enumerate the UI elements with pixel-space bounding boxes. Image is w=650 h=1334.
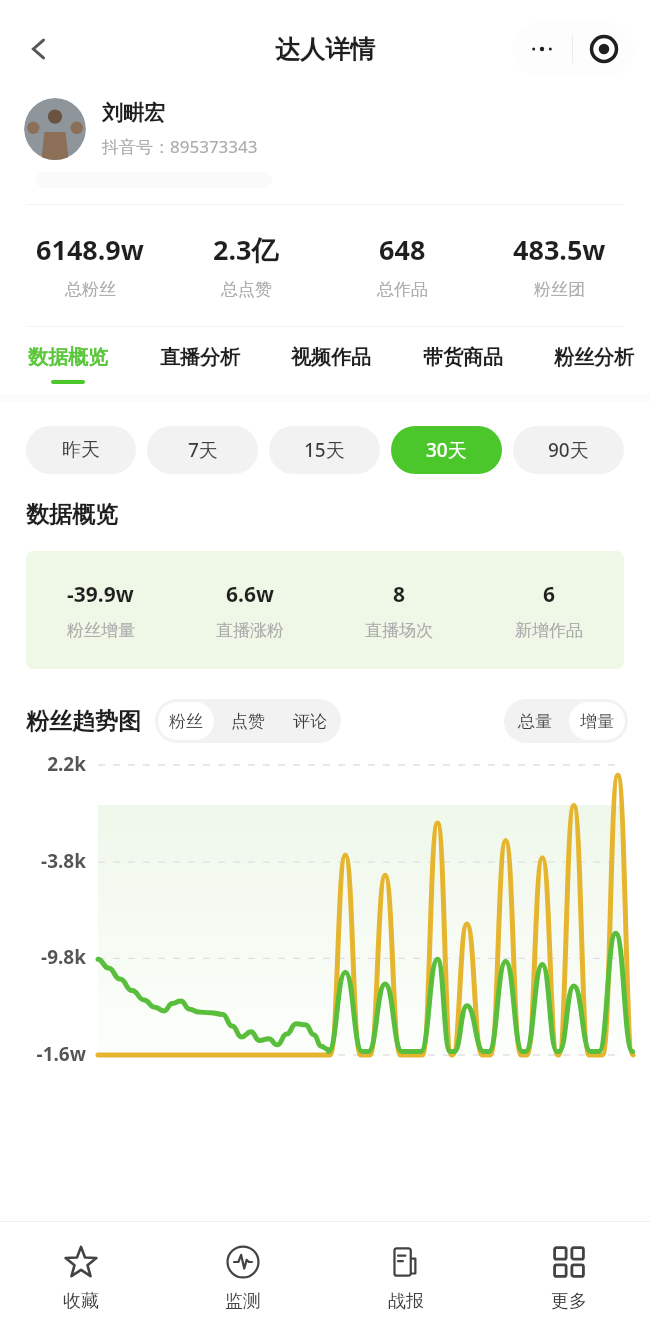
- button[interactable]: Back: [12, 22, 66, 76]
- button[interactable]: -39.9w: [26, 551, 624, 669]
- button[interactable]: More: [487, 1222, 650, 1334]
- button[interactable]: 带货商品: [423, 345, 503, 384]
- staticText: 视频作品: [291, 345, 371, 370]
- button[interactable]: 昨天: [26, 426, 136, 474]
- button[interactable]: More: [512, 22, 572, 76]
- staticText: -3.8k: [14, 848, 86, 874]
- staticText: 483.5w: [513, 231, 606, 268]
- staticText: 达人详情: [275, 34, 375, 65]
- staticText: 90天: [548, 437, 589, 463]
- button[interactable]: 刘畊宏: [24, 98, 626, 160]
- staticText: 战报: [388, 1290, 424, 1313]
- staticText: -9.8k: [14, 944, 86, 970]
- staticText: 更多: [551, 1290, 587, 1313]
- button[interactable]: Report: [324, 1222, 487, 1334]
- staticText: 直播涨粉: [216, 620, 284, 641]
- staticText: 6.6w: [226, 580, 274, 609]
- staticText: 15天: [304, 437, 345, 463]
- staticText: 监测: [225, 1290, 261, 1313]
- button[interactable]: 90天: [513, 426, 624, 474]
- button[interactable]: 视频作品: [291, 345, 371, 384]
- other: More: [551, 1244, 587, 1280]
- staticText: -1.6w: [14, 1041, 86, 1067]
- staticText: 数据概览: [28, 345, 108, 370]
- button[interactable]: 点赞: [220, 702, 276, 740]
- staticText: 8: [393, 580, 406, 609]
- staticText: 总粉丝: [65, 279, 116, 300]
- staticText: 2.2k: [14, 751, 86, 777]
- staticText: 粉丝分析: [554, 345, 634, 370]
- button[interactable]: 总量: [507, 702, 563, 740]
- staticText: 直播分析: [160, 345, 240, 370]
- button[interactable]: 增量: [569, 702, 625, 740]
- button[interactable]: 评论: [282, 702, 338, 740]
- button[interactable]: 直播分析: [160, 345, 240, 384]
- staticText: 总点赞: [221, 279, 272, 300]
- staticText: 新增作品: [515, 620, 583, 641]
- other: Favorites: [63, 1244, 99, 1280]
- button[interactable]: Monitor: [162, 1222, 324, 1334]
- button[interactable]: 30天: [391, 426, 502, 474]
- staticText: 30天: [426, 437, 467, 463]
- staticText: 7天: [188, 437, 218, 463]
- staticText: 数据概览: [26, 500, 118, 529]
- button[interactable]: 粉丝: [158, 702, 214, 740]
- staticText: 点赞: [231, 711, 265, 732]
- staticText: 刘畊宏: [102, 100, 165, 126]
- staticText: 抖音号：895373343: [102, 135, 258, 158]
- button[interactable]: 数据概览: [28, 345, 108, 384]
- button[interactable]: Locate: [573, 22, 634, 76]
- button[interactable]: 粉丝分析: [554, 345, 634, 384]
- staticText: 总作品: [377, 279, 428, 300]
- button[interactable]: 6148.9w: [12, 231, 168, 300]
- button[interactable]: 7天: [147, 426, 258, 474]
- staticText: 6: [543, 580, 556, 609]
- staticText: 增量: [580, 711, 614, 732]
- staticText: 粉丝增量: [67, 620, 135, 641]
- button[interactable]: 648: [324, 231, 481, 300]
- staticText: 粉丝: [169, 711, 203, 732]
- staticText: 直播场次: [365, 620, 433, 641]
- button[interactable]: 483.5w: [481, 231, 638, 300]
- staticText: 粉丝趋势图: [26, 707, 141, 736]
- staticText: 收藏: [63, 1290, 99, 1313]
- other: Report: [388, 1244, 424, 1280]
- staticText: 带货商品: [423, 345, 503, 370]
- staticText: 粉丝团: [534, 279, 585, 300]
- other: Monitor: [225, 1244, 261, 1280]
- staticText: 昨天: [62, 438, 100, 462]
- staticText: -39.9w: [67, 580, 134, 609]
- button[interactable]: Favorites: [0, 1222, 162, 1334]
- staticText: 评论: [293, 711, 327, 732]
- staticText: 总量: [518, 711, 552, 732]
- staticText: 2.3亿: [213, 231, 279, 268]
- button[interactable]: 2.3亿: [168, 231, 324, 300]
- button[interactable]: 15天: [269, 426, 380, 474]
- staticText: 6148.9w: [36, 231, 144, 268]
- staticText: 648: [379, 231, 426, 268]
